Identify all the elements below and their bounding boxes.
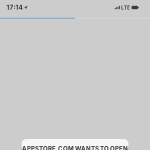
staticText: LTE [121,4,130,11]
staticText: 17:14 [6,4,22,11]
staticText: APPSTORE.COM WANTS TO OPEN [22,145,128,150]
button[interactable]: APPSTORE.COM WANTS TO OPEN [21,139,128,150]
